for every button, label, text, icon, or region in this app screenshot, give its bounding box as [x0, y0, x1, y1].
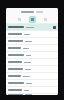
button[interactable] — [6, 80, 58, 86]
button[interactable]: Third tab — [42, 16, 49, 23]
button[interactable] — [6, 38, 58, 44]
button[interactable] — [6, 52, 58, 58]
button[interactable] — [6, 59, 58, 65]
button[interactable] — [6, 24, 58, 30]
button[interactable] — [6, 87, 58, 93]
button[interactable] — [6, 31, 58, 37]
button[interactable] — [6, 45, 58, 51]
button[interactable] — [6, 94, 58, 95]
button[interactable] — [6, 66, 58, 72]
button[interactable]: Second tab, selected — [29, 16, 36, 23]
button[interactable] — [6, 73, 58, 79]
button[interactable]: First tab — [16, 16, 23, 23]
